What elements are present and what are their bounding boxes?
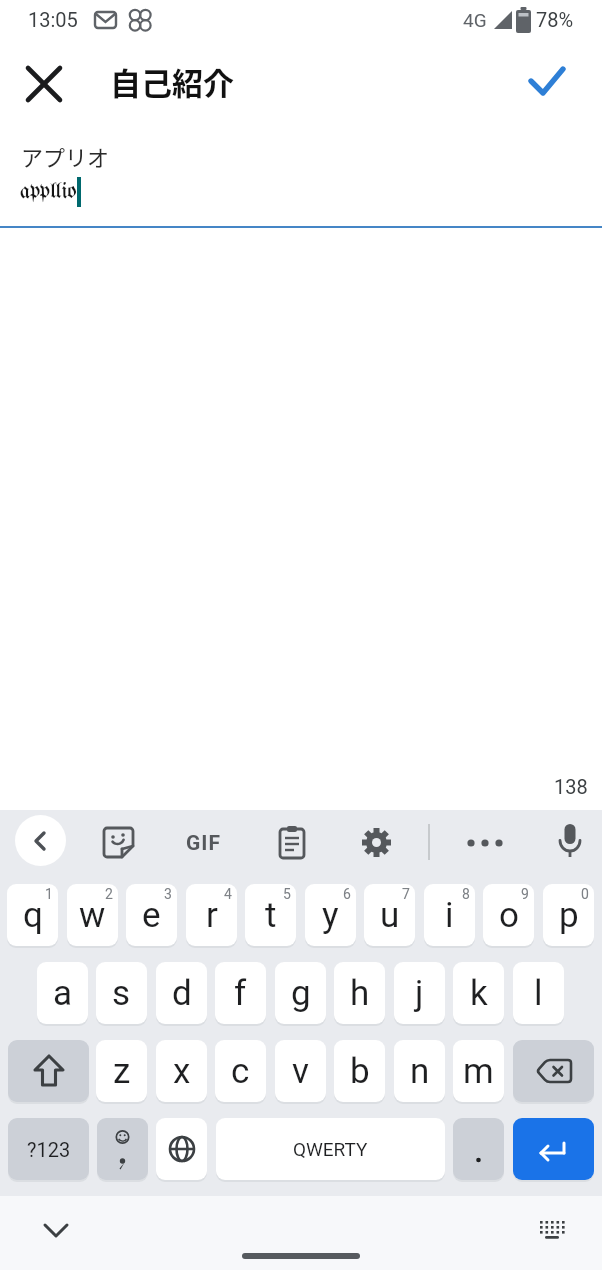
button[interactable]: c bbox=[215, 1040, 266, 1102]
button[interactable]: g bbox=[275, 962, 326, 1024]
staticText: z bbox=[113, 1051, 131, 1092]
button[interactable]: d bbox=[156, 962, 207, 1024]
staticText: アプリオ bbox=[21, 140, 110, 172]
button[interactable]: w bbox=[67, 884, 118, 946]
staticText: s bbox=[112, 973, 131, 1014]
staticText: k bbox=[470, 973, 488, 1014]
staticText: QWERTY bbox=[293, 1138, 368, 1160]
staticText: w bbox=[79, 895, 106, 936]
staticText: 138 bbox=[554, 775, 588, 798]
staticText: l bbox=[534, 973, 543, 1014]
button[interactable] bbox=[513, 1040, 594, 1102]
staticText: 4G bbox=[463, 9, 487, 31]
staticText: 1 bbox=[45, 886, 53, 902]
staticText: appllio bbox=[20, 181, 77, 204]
staticText: r bbox=[206, 895, 218, 936]
button[interactable] bbox=[552, 822, 588, 864]
button[interactable]: j bbox=[394, 962, 445, 1024]
button[interactable]: i bbox=[424, 884, 475, 946]
button[interactable]: ?123 bbox=[8, 1118, 89, 1180]
staticText: ?123 bbox=[27, 1138, 71, 1161]
staticText: f bbox=[234, 973, 247, 1014]
staticText: 0 bbox=[581, 886, 589, 902]
staticText: b bbox=[350, 1051, 370, 1092]
staticText: m bbox=[463, 1051, 494, 1092]
button[interactable] bbox=[15, 815, 66, 866]
staticText: 9 bbox=[521, 886, 529, 902]
button[interactable]: t bbox=[245, 884, 296, 946]
staticText: a bbox=[53, 973, 73, 1014]
button[interactable]: h bbox=[334, 962, 385, 1024]
button[interactable]: a bbox=[37, 962, 88, 1024]
button[interactable]: v bbox=[275, 1040, 326, 1102]
staticText: 2 bbox=[105, 886, 113, 902]
staticText: x bbox=[173, 1051, 191, 1092]
button[interactable]: r bbox=[186, 884, 237, 946]
button[interactable] bbox=[8, 1040, 89, 1102]
button[interactable] bbox=[34, 1208, 78, 1252]
staticText: h bbox=[350, 973, 370, 1014]
button[interactable]: m bbox=[453, 1040, 504, 1102]
staticText: c bbox=[231, 1051, 250, 1092]
button[interactable] bbox=[462, 828, 508, 858]
button[interactable]: l bbox=[513, 962, 564, 1024]
staticText: 7 bbox=[402, 886, 410, 902]
button[interactable] bbox=[521, 56, 573, 108]
button[interactable] bbox=[360, 826, 393, 859]
staticText: 6 bbox=[343, 886, 351, 902]
staticText: 8 bbox=[462, 886, 470, 902]
button[interactable] bbox=[530, 1208, 574, 1252]
button[interactable]: u bbox=[364, 884, 415, 946]
staticText: v bbox=[292, 1051, 309, 1092]
button[interactable]: k bbox=[453, 962, 504, 1024]
staticText: i bbox=[445, 895, 454, 936]
button[interactable]: s bbox=[96, 962, 147, 1024]
staticText: g bbox=[291, 973, 311, 1014]
button[interactable] bbox=[97, 1118, 148, 1180]
button[interactable] bbox=[513, 1118, 594, 1180]
button[interactable] bbox=[276, 826, 308, 858]
staticText: 5 bbox=[283, 886, 291, 902]
button[interactable]: GIF bbox=[178, 828, 228, 858]
button[interactable]: f bbox=[215, 962, 266, 1024]
button[interactable] bbox=[102, 826, 136, 860]
staticText: 4 bbox=[224, 886, 232, 902]
button[interactable]: q bbox=[7, 884, 58, 946]
button[interactable]: p bbox=[543, 884, 594, 946]
staticText: o bbox=[499, 895, 519, 936]
button[interactable] bbox=[453, 1118, 504, 1180]
staticText: j bbox=[415, 973, 424, 1014]
staticText: 3 bbox=[164, 886, 172, 902]
button[interactable]: y bbox=[305, 884, 356, 946]
button[interactable]: z bbox=[96, 1040, 147, 1102]
staticText: u bbox=[380, 895, 400, 936]
button[interactable]: o bbox=[483, 884, 534, 946]
staticText: 78% bbox=[536, 8, 574, 31]
staticText: t bbox=[265, 895, 277, 936]
staticText: q bbox=[23, 895, 43, 936]
staticText: d bbox=[172, 973, 192, 1014]
staticText: p bbox=[559, 895, 579, 936]
button[interactable]: QWERTY bbox=[216, 1118, 445, 1180]
button[interactable] bbox=[18, 58, 70, 110]
staticText: e bbox=[142, 895, 161, 936]
button[interactable]: n bbox=[394, 1040, 445, 1102]
staticText: GIF bbox=[186, 831, 221, 856]
button[interactable]: b bbox=[334, 1040, 385, 1102]
staticText: n bbox=[410, 1051, 430, 1092]
staticText: 自己紹介 bbox=[110, 59, 234, 104]
button[interactable] bbox=[156, 1118, 207, 1180]
staticText: y bbox=[322, 895, 339, 936]
staticText: 13:05 bbox=[28, 8, 78, 31]
button[interactable]: e bbox=[126, 884, 177, 946]
button[interactable]: x bbox=[156, 1040, 207, 1102]
